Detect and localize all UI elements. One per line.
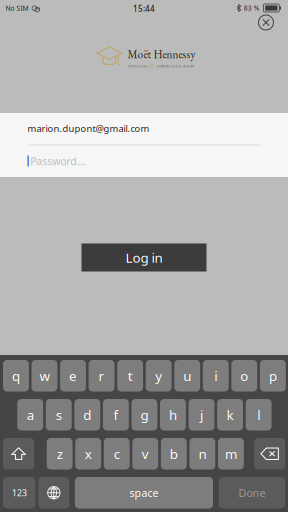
- staticText: 123: [12, 487, 27, 499]
- button[interactable]: s: [46, 399, 72, 430]
- button[interactable]: j: [189, 399, 214, 430]
- button[interactable]: z: [47, 438, 73, 469]
- staticText: Log in: [125, 249, 162, 266]
- button[interactable]: d: [74, 399, 100, 430]
- button[interactable]: p: [260, 360, 286, 391]
- staticText: z: [57, 445, 63, 463]
- staticText: k: [227, 406, 234, 424]
- staticText: c: [114, 445, 120, 463]
- staticText: f: [113, 406, 118, 424]
- staticText: s: [56, 406, 62, 424]
- staticText: y: [155, 367, 162, 385]
- staticText: q: [12, 367, 20, 385]
- button[interactable]: h: [160, 399, 186, 430]
- button[interactable]: b: [161, 438, 187, 469]
- staticText: Moët Hennessy: [127, 47, 195, 62]
- button[interactable]: Done: [219, 477, 285, 508]
- button[interactable]: space: [75, 477, 213, 508]
- button[interactable]: Close: [253, 9, 279, 35]
- staticText: g: [140, 406, 148, 424]
- button[interactable]: a: [17, 399, 43, 430]
- staticText: p: [269, 367, 277, 385]
- staticText: o: [240, 367, 248, 385]
- staticText: BRAND EDUCATION: [157, 63, 194, 69]
- staticText: h: [169, 406, 177, 424]
- button[interactable]: o: [231, 360, 257, 391]
- button[interactable]: q: [3, 360, 29, 391]
- button[interactable]: 123: [3, 477, 35, 508]
- staticText: w: [39, 367, 49, 385]
- staticText: 83 %: [244, 4, 260, 12]
- button[interactable]: e: [60, 360, 86, 391]
- button[interactable]: m: [218, 438, 244, 469]
- staticText: v: [142, 445, 149, 463]
- staticText: d: [83, 406, 91, 424]
- staticText: a: [27, 406, 34, 424]
- button[interactable]: k: [217, 399, 243, 430]
- staticText: x: [85, 445, 92, 463]
- button[interactable]: l: [246, 399, 272, 430]
- button[interactable]: Shift: [3, 438, 34, 469]
- staticText: Done: [238, 486, 265, 500]
- staticText: u: [183, 367, 191, 385]
- staticText: PORTFOLIO: [128, 63, 148, 69]
- button[interactable]: v: [132, 438, 158, 469]
- button[interactable]: f: [103, 399, 129, 430]
- staticText: space: [129, 486, 158, 500]
- staticText: Password...: [30, 154, 86, 168]
- staticText: marion.dupont@gmail.com: [27, 122, 149, 135]
- staticText: 15:44: [133, 3, 155, 14]
- button[interactable]: w: [32, 360, 57, 391]
- button[interactable]: g: [131, 399, 157, 430]
- button[interactable]: u: [174, 360, 200, 391]
- button[interactable]: y: [146, 360, 172, 391]
- button[interactable]: r: [89, 360, 115, 391]
- staticText: l: [257, 406, 260, 424]
- staticText: j: [200, 406, 203, 424]
- staticText: &: [150, 61, 155, 69]
- button[interactable]: i: [203, 360, 229, 391]
- button[interactable]: t: [117, 360, 143, 391]
- button[interactable]: Password...: [0, 113, 288, 145]
- staticText: t: [128, 367, 133, 385]
- staticText: n: [198, 445, 206, 463]
- staticText: No SIM: [5, 4, 28, 13]
- button[interactable]: x: [75, 438, 101, 469]
- staticText: m: [225, 445, 237, 463]
- button[interactable]: c: [104, 438, 130, 469]
- button[interactable]: n: [189, 438, 215, 469]
- staticText: r: [99, 367, 105, 385]
- staticText: b: [170, 445, 178, 463]
- staticText: e: [69, 367, 77, 385]
- staticText: i: [214, 367, 217, 385]
- button[interactable]: Next keyboard: [38, 477, 69, 508]
- button[interactable]: Delete: [254, 438, 285, 469]
- button[interactable]: Log in: [81, 243, 206, 271]
- button[interactable]: marion.dupont@gmail.com: [0, 113, 288, 144]
